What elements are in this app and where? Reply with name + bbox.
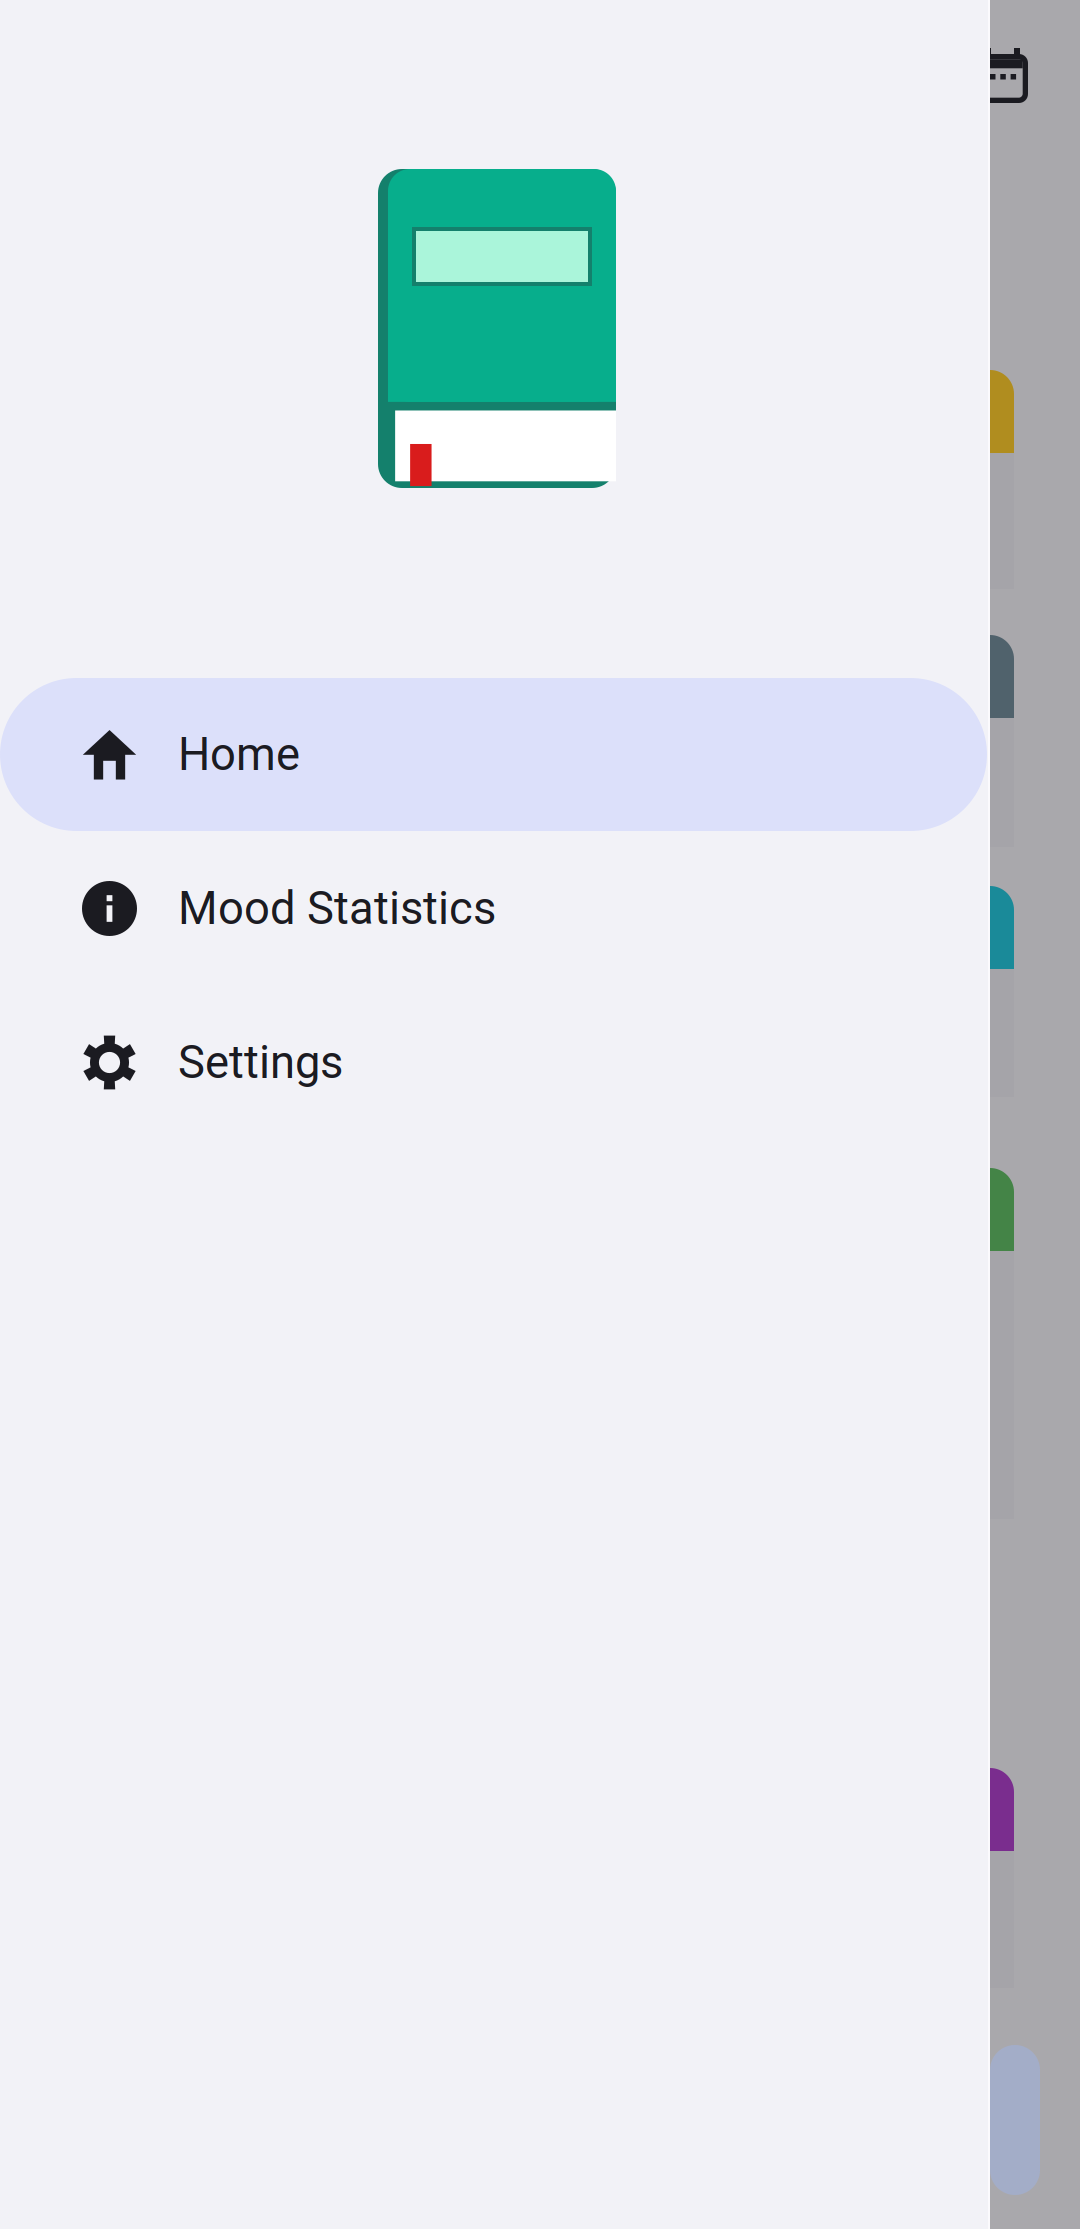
- button[interactable]: Mood Statistics: [0, 832, 990, 985]
- staticText: Home: [178, 728, 300, 781]
- button[interactable]: Home: [0, 678, 990, 831]
- staticText: Mood Statistics: [178, 882, 496, 935]
- button[interactable]: Settings: [0, 986, 990, 1139]
- staticText: Settings: [178, 1036, 343, 1089]
- button[interactable]: Calendar: [979, 54, 1028, 103]
